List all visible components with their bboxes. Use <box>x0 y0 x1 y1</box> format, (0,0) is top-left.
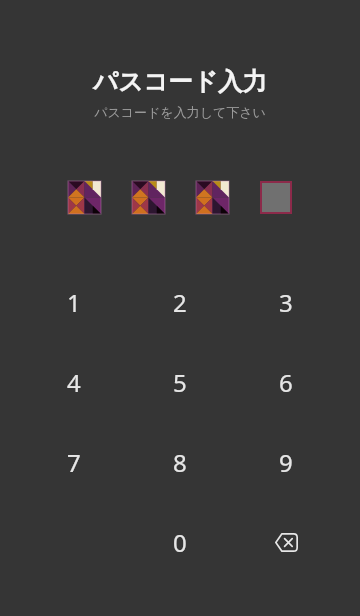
button[interactable]: 6 <box>233 342 339 422</box>
staticText: 1 <box>67 286 81 319</box>
staticText: 5 <box>173 366 187 399</box>
button[interactable]: 3 <box>233 262 339 342</box>
staticText: 7 <box>67 446 81 479</box>
staticText: 0 <box>173 526 187 559</box>
button[interactable]: Delete <box>233 502 339 582</box>
button[interactable]: 2 <box>127 262 233 342</box>
button[interactable]: 0 <box>127 502 233 582</box>
button[interactable]: 9 <box>233 422 339 502</box>
button[interactable]: 5 <box>127 342 233 422</box>
staticText: 9 <box>279 446 293 479</box>
staticText: パスコードを入力して下さい <box>94 104 266 120</box>
staticText: パスコード入力 <box>93 66 267 97</box>
staticText: 4 <box>67 366 81 399</box>
button[interactable]: 1 <box>21 262 127 342</box>
button[interactable]: 4 <box>21 342 127 422</box>
staticText: 2 <box>173 286 187 319</box>
staticText: 8 <box>173 446 187 479</box>
button[interactable]: 7 <box>21 422 127 502</box>
staticText: 6 <box>279 366 293 399</box>
staticText: 3 <box>279 286 293 319</box>
button[interactable]: 8 <box>127 422 233 502</box>
